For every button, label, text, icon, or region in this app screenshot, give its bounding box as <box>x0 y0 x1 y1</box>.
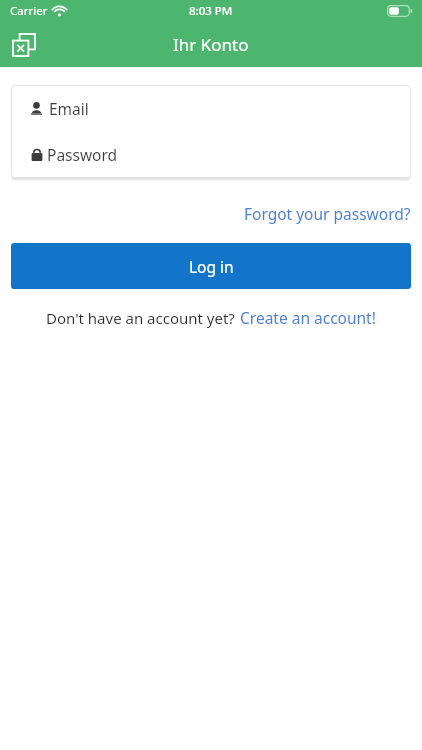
staticText: Password <box>47 144 118 165</box>
staticText: Ihr Konto <box>173 33 249 56</box>
staticText: 8:03 PM <box>189 3 233 19</box>
staticText: Log in <box>189 256 234 277</box>
staticText: Forgot your password? <box>244 203 411 224</box>
button[interactable]: Forgot your password? <box>233 200 422 227</box>
button[interactable]: Email <box>11 85 411 131</box>
staticText: Carrier <box>10 3 48 19</box>
staticText: Email <box>49 98 89 119</box>
button[interactable]: Create an account! <box>240 307 376 328</box>
button[interactable]: Close <box>6 27 42 63</box>
button[interactable]: Log in <box>11 243 411 289</box>
staticText: Create an account! <box>240 307 376 328</box>
button[interactable]: Password <box>11 131 411 177</box>
staticText: Don't have an account yet? <box>46 308 235 328</box>
